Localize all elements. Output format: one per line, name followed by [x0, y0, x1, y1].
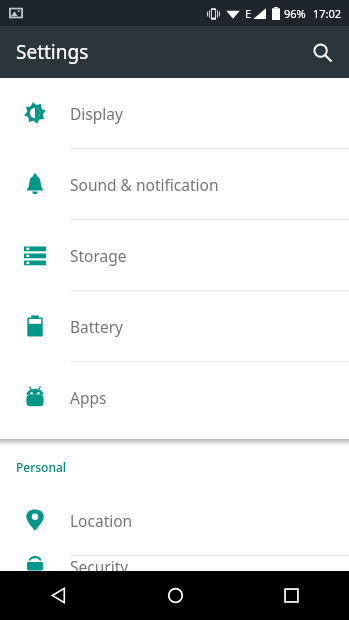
button[interactable]: Display — [0, 78, 349, 148]
button[interactable]: Recent apps — [233, 571, 349, 620]
staticText: Apps — [70, 387, 107, 408]
staticText: Battery — [70, 316, 124, 337]
button[interactable]: Home — [117, 571, 233, 620]
staticText: Storage — [70, 245, 127, 266]
staticText: Personal — [16, 459, 67, 475]
button[interactable]: Search — [300, 30, 344, 74]
button[interactable]: Security — [0, 556, 349, 571]
button[interactable]: Back — [0, 571, 117, 620]
staticText: Security — [70, 556, 129, 571]
staticText: 96% — [284, 6, 306, 21]
button[interactable]: Sound & notification — [0, 149, 349, 219]
staticText: Settings — [16, 39, 89, 65]
staticText: Location — [70, 510, 133, 531]
staticText: Display — [70, 103, 123, 124]
button[interactable]: Location — [0, 485, 349, 555]
button[interactable]: Battery — [0, 291, 349, 361]
button[interactable]: Storage — [0, 220, 349, 290]
staticText: 17:02 — [313, 6, 342, 21]
button[interactable]: Apps — [0, 362, 349, 432]
staticText: E — [245, 6, 252, 21]
staticText: Sound & notification — [70, 174, 219, 195]
